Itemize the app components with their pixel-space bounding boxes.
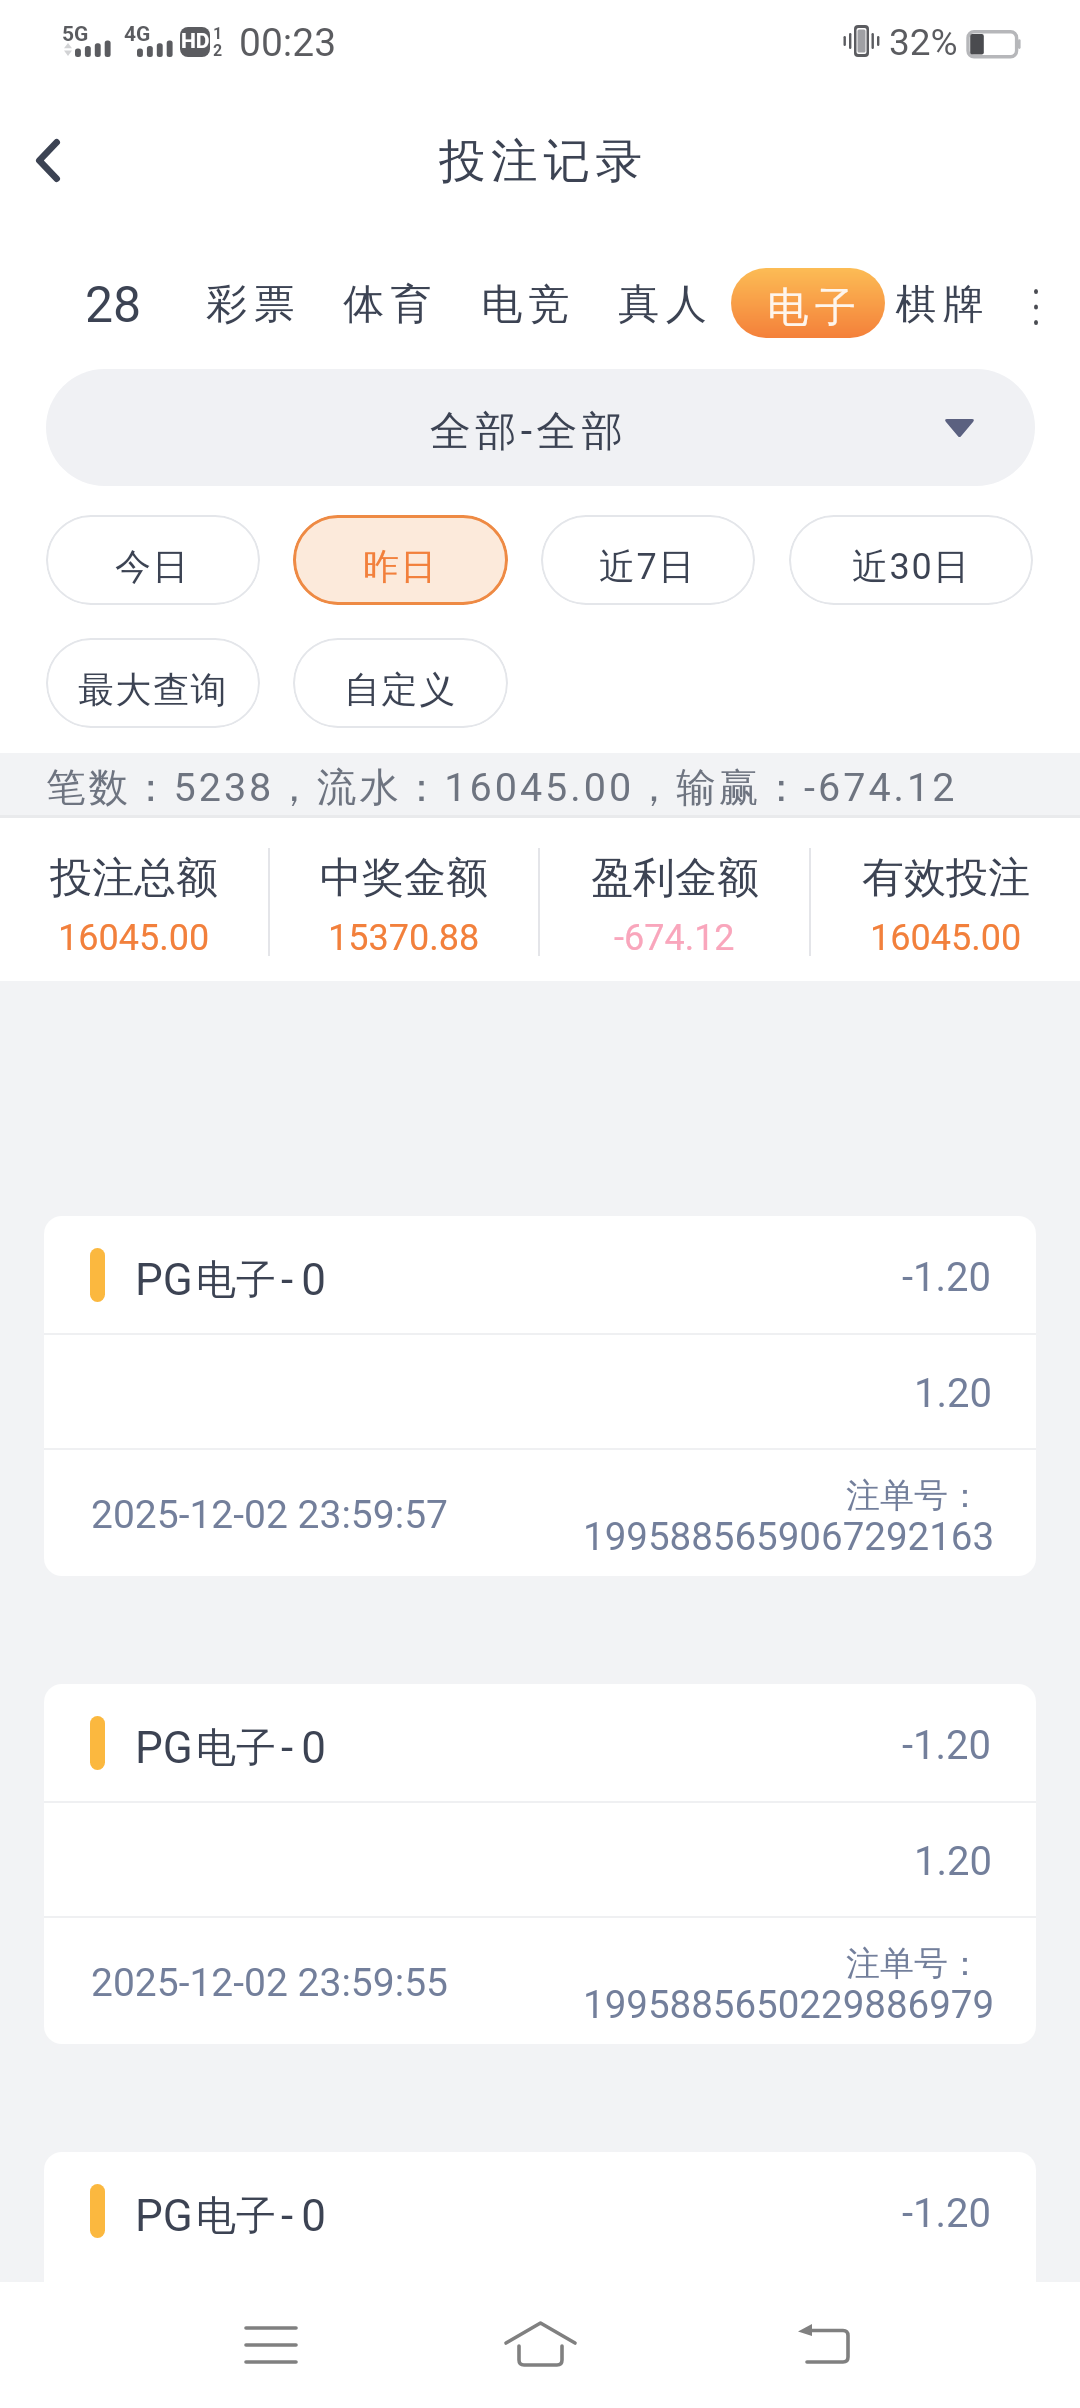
button[interactable]: 体育 bbox=[340, 263, 435, 343]
staticText: -674.12 bbox=[614, 917, 735, 959]
staticText: -1.20 bbox=[902, 1254, 992, 1301]
button[interactable]: 电子 bbox=[731, 268, 885, 338]
staticText: 中奖金额 bbox=[320, 852, 488, 905]
staticText: 近7日 bbox=[599, 544, 697, 589]
button[interactable]: PG bbox=[44, 1216, 1036, 1576]
staticText: 4G bbox=[124, 22, 151, 47]
button[interactable]: PG bbox=[44, 2152, 1036, 2389]
staticText: -1.20 bbox=[902, 2190, 992, 2237]
staticText: 盈利金额 bbox=[591, 852, 759, 905]
staticText: 1995885659067292163 bbox=[583, 1514, 995, 1559]
button[interactable]: Back bbox=[758, 2282, 888, 2408]
button[interactable]: 28 bbox=[85, 260, 142, 347]
button[interactable]: 近30日 bbox=[789, 515, 1033, 605]
staticText: 32% bbox=[889, 21, 958, 64]
button[interactable]: Back bbox=[0, 100, 108, 220]
staticText: 16045.00 bbox=[870, 917, 1022, 959]
staticText: 2025-12-02 23:59:55 bbox=[91, 1960, 448, 2006]
staticText: 16045.00 bbox=[58, 917, 210, 959]
staticText: 棋牌 bbox=[892, 279, 987, 331]
staticText: -1.20 bbox=[902, 1722, 992, 1769]
button[interactable]: PG bbox=[44, 1684, 1036, 2044]
staticText: 5G bbox=[62, 22, 89, 47]
staticText: 电子 bbox=[196, 1722, 276, 1772]
staticText: 电竞 bbox=[478, 279, 573, 331]
staticText: 注单号： bbox=[846, 1474, 982, 1517]
staticText: 彩票 bbox=[203, 279, 298, 331]
staticText: 最大查询 bbox=[78, 667, 229, 712]
staticText: 1995885650229886979 bbox=[583, 1982, 995, 2027]
button[interactable]: 今日 bbox=[46, 515, 260, 605]
button[interactable]: 昨日 bbox=[293, 515, 508, 605]
button[interactable]: 最大查询 bbox=[46, 638, 260, 728]
staticText: HD bbox=[181, 29, 210, 54]
staticText: -0 bbox=[281, 1254, 334, 1306]
staticText: 昨日 bbox=[363, 544, 439, 589]
button[interactable]: Home bbox=[475, 2282, 605, 2408]
staticText: 1.20 bbox=[914, 1838, 992, 1885]
staticText: 28 bbox=[85, 276, 142, 335]
button[interactable]: 电竞 bbox=[478, 263, 573, 343]
staticText: 注单号： bbox=[846, 1942, 982, 1985]
staticText: 投注总额 bbox=[50, 852, 218, 905]
staticText: 近30日 bbox=[852, 544, 971, 589]
staticText: 真人 bbox=[615, 279, 710, 331]
button[interactable]: 真人 bbox=[615, 263, 710, 343]
button[interactable]: More categories bbox=[1014, 281, 1058, 325]
staticText: PG bbox=[135, 1722, 193, 1774]
staticText: 笔数：5238，流水：16045.00，输赢：-674.12 bbox=[46, 763, 958, 813]
staticText: 电子 bbox=[196, 2190, 276, 2240]
staticText: 1 bbox=[213, 24, 223, 43]
button[interactable]: 近7日 bbox=[541, 515, 755, 605]
staticText: -0 bbox=[281, 2190, 334, 2242]
staticText: -0 bbox=[281, 1722, 334, 1774]
staticText: PG bbox=[135, 2190, 193, 2242]
staticText: 今日 bbox=[115, 544, 191, 589]
button[interactable]: 自定义 bbox=[293, 638, 508, 728]
staticText: 体育 bbox=[340, 279, 435, 331]
button[interactable]: 全部-全部 bbox=[46, 369, 1035, 486]
button[interactable]: 彩票 bbox=[203, 263, 298, 343]
staticText: PG bbox=[135, 1254, 193, 1306]
staticText: 15370.88 bbox=[328, 917, 480, 959]
staticText: 全部-全部 bbox=[430, 406, 628, 458]
staticText: 有效投注 bbox=[862, 852, 1030, 905]
button[interactable]: 棋牌 bbox=[892, 263, 987, 343]
button[interactable]: Recent apps bbox=[206, 2282, 336, 2408]
staticText: 投注记录 bbox=[439, 132, 648, 191]
staticText: 电子 bbox=[764, 282, 859, 334]
staticText: 1.20 bbox=[914, 1370, 992, 1417]
staticText: 00:23 bbox=[239, 20, 337, 66]
staticText: 电子 bbox=[196, 1254, 276, 1304]
staticText: 2025-12-02 23:59:57 bbox=[91, 1492, 448, 1538]
staticText: 2 bbox=[213, 41, 223, 60]
staticText: 自定义 bbox=[344, 667, 457, 712]
